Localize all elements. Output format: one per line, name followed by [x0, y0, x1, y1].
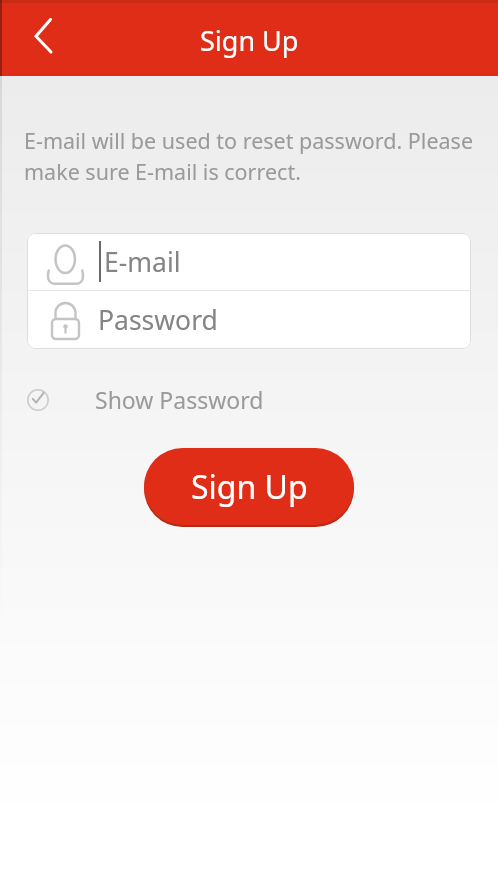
button[interactable]: E-mail — [27, 233, 471, 290]
staticText: Sign Up — [191, 465, 308, 509]
staticText: E-mail will be used to reset password. P… — [24, 126, 474, 187]
staticText: Show Password — [95, 384, 264, 415]
button[interactable]: Password — [27, 291, 471, 349]
button[interactable]: Show Password — [27, 384, 264, 415]
staticText: E-mail — [104, 244, 181, 280]
staticText: Password — [98, 302, 218, 338]
button[interactable] — [0, 0, 70, 76]
staticText: Sign Up — [200, 22, 299, 59]
button[interactable]: Sign Up — [144, 448, 354, 525]
